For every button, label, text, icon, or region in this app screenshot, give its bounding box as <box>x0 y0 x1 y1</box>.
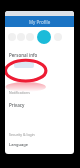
button[interactable] <box>14 62 34 68</box>
staticText: Notifications <box>9 90 30 95</box>
staticText: Personal info <box>9 52 38 58</box>
staticText: My Profile <box>29 19 51 25</box>
button[interactable] <box>54 33 62 41</box>
staticText: Privacy <box>9 102 25 108</box>
staticText: Security & login <box>9 132 35 137</box>
button[interactable] <box>37 30 51 44</box>
button[interactable] <box>8 33 16 41</box>
button[interactable] <box>17 33 25 41</box>
staticText: Language <box>9 142 28 147</box>
button[interactable] <box>26 33 34 41</box>
